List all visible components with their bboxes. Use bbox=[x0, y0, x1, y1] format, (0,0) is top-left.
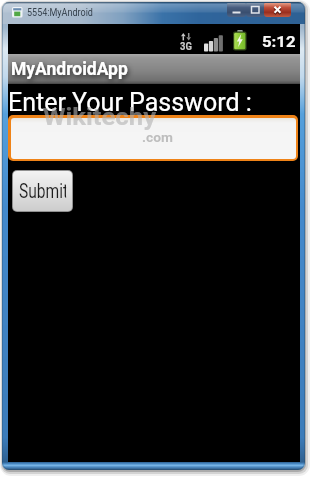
staticText: 3G bbox=[180, 40, 193, 52]
staticText: MyAndroidApp bbox=[11, 59, 128, 80]
staticText: .com bbox=[142, 131, 173, 145]
staticText: 5:12 bbox=[262, 33, 297, 51]
button[interactable]: Submit bbox=[12, 170, 73, 212]
button[interactable] bbox=[246, 3, 264, 17]
button[interactable] bbox=[8, 115, 298, 161]
button[interactable] bbox=[264, 3, 291, 17]
button[interactable] bbox=[227, 3, 246, 17]
staticText: Enter Your Password : bbox=[8, 88, 252, 117]
staticText: Submit bbox=[19, 180, 66, 203]
staticText: Wikitechy bbox=[43, 103, 156, 131]
staticText: 5554:MyAndroid bbox=[27, 6, 93, 19]
